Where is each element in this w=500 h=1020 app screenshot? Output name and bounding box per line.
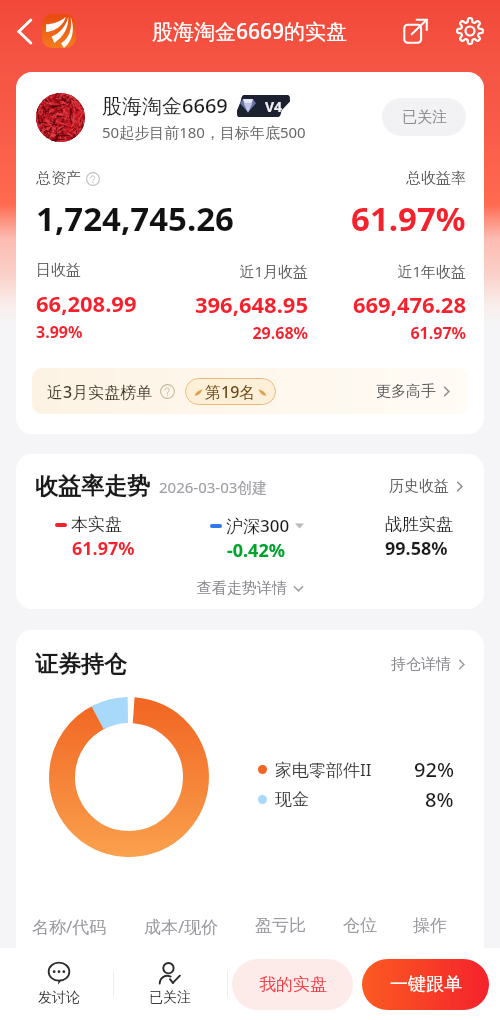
staticText: 一键跟单: [390, 973, 462, 996]
staticText: 第19名: [205, 381, 256, 403]
button[interactable]: App icon: [42, 14, 76, 48]
button[interactable]: 已关注: [113, 948, 227, 1020]
staticText: 近3月实盘榜单: [47, 381, 153, 403]
staticText: 历史收益: [389, 477, 449, 496]
staticText: 股海淘金6669: [102, 92, 228, 119]
staticText: 总收益率: [406, 169, 466, 188]
staticText: -0.42%: [227, 538, 285, 563]
staticText: 发讨论: [38, 989, 80, 1007]
staticText: 66,208.99: [36, 288, 150, 318]
staticText: 我的实盘: [259, 974, 327, 995]
staticText: 日收益: [36, 261, 150, 280]
staticText: 396,648.95: [150, 289, 308, 319]
staticText: 家电零部件II: [275, 758, 372, 781]
staticText: 本实盘: [71, 514, 122, 535]
button[interactable]: 历史收益: [389, 473, 466, 500]
staticText: 29.68%: [150, 322, 308, 344]
staticText: 盈亏比: [255, 915, 306, 936]
staticText: 已关注: [402, 108, 447, 127]
button[interactable]: 我的实盘: [232, 959, 353, 1010]
staticText: V4: [265, 97, 283, 116]
staticText: 证券持仓: [35, 650, 127, 679]
staticText: 持仓详情: [391, 655, 451, 674]
button[interactable]: Settings: [449, 10, 491, 52]
button[interactable]: Back: [9, 7, 39, 55]
button[interactable]: 一键跟单: [362, 959, 489, 1010]
staticText: 名称/代码: [32, 915, 107, 938]
button[interactable]: 持仓详情: [391, 651, 468, 678]
staticText: 沪深300: [226, 514, 290, 537]
staticText: 3.99%: [36, 321, 150, 343]
staticText: 61.97%: [308, 322, 466, 344]
staticText: 8%: [425, 786, 454, 813]
staticText: 近1年收益: [308, 261, 466, 281]
staticText: 1,724,745.26: [36, 196, 234, 241]
staticText: 战胜实盘: [385, 514, 453, 535]
staticText: 总资产: [36, 169, 81, 188]
staticText: 61.97%: [72, 536, 135, 561]
staticText: 近1月收益: [150, 261, 308, 281]
button[interactable]: 查看走势详情: [35, 579, 466, 598]
staticText: 查看走势详情: [197, 579, 287, 598]
button[interactable]: 近3月实盘榜单: [32, 368, 468, 414]
button[interactable]: 发讨论: [0, 948, 113, 1020]
button[interactable]: 已关注: [382, 98, 466, 136]
staticText: 现金: [275, 789, 309, 810]
staticText: 成本/现价: [144, 915, 219, 938]
staticText: 仓位: [343, 915, 377, 936]
staticText: 收益率走势: [35, 472, 150, 501]
staticText: 50起步目前180，目标年底500: [102, 122, 306, 142]
staticText: 操作: [413, 915, 447, 936]
staticText: 99.58%: [385, 536, 448, 561]
staticText: 669,476.28: [308, 289, 466, 319]
staticText: 股海淘金6669的实盘: [152, 17, 348, 46]
staticText: 92%: [414, 756, 454, 783]
staticText: 61.97%: [351, 196, 466, 241]
button[interactable]: Share: [394, 10, 436, 52]
staticText: 更多高手: [376, 382, 436, 401]
staticText: 2026-03-03创建: [159, 477, 268, 497]
staticText: 已关注: [149, 989, 191, 1007]
